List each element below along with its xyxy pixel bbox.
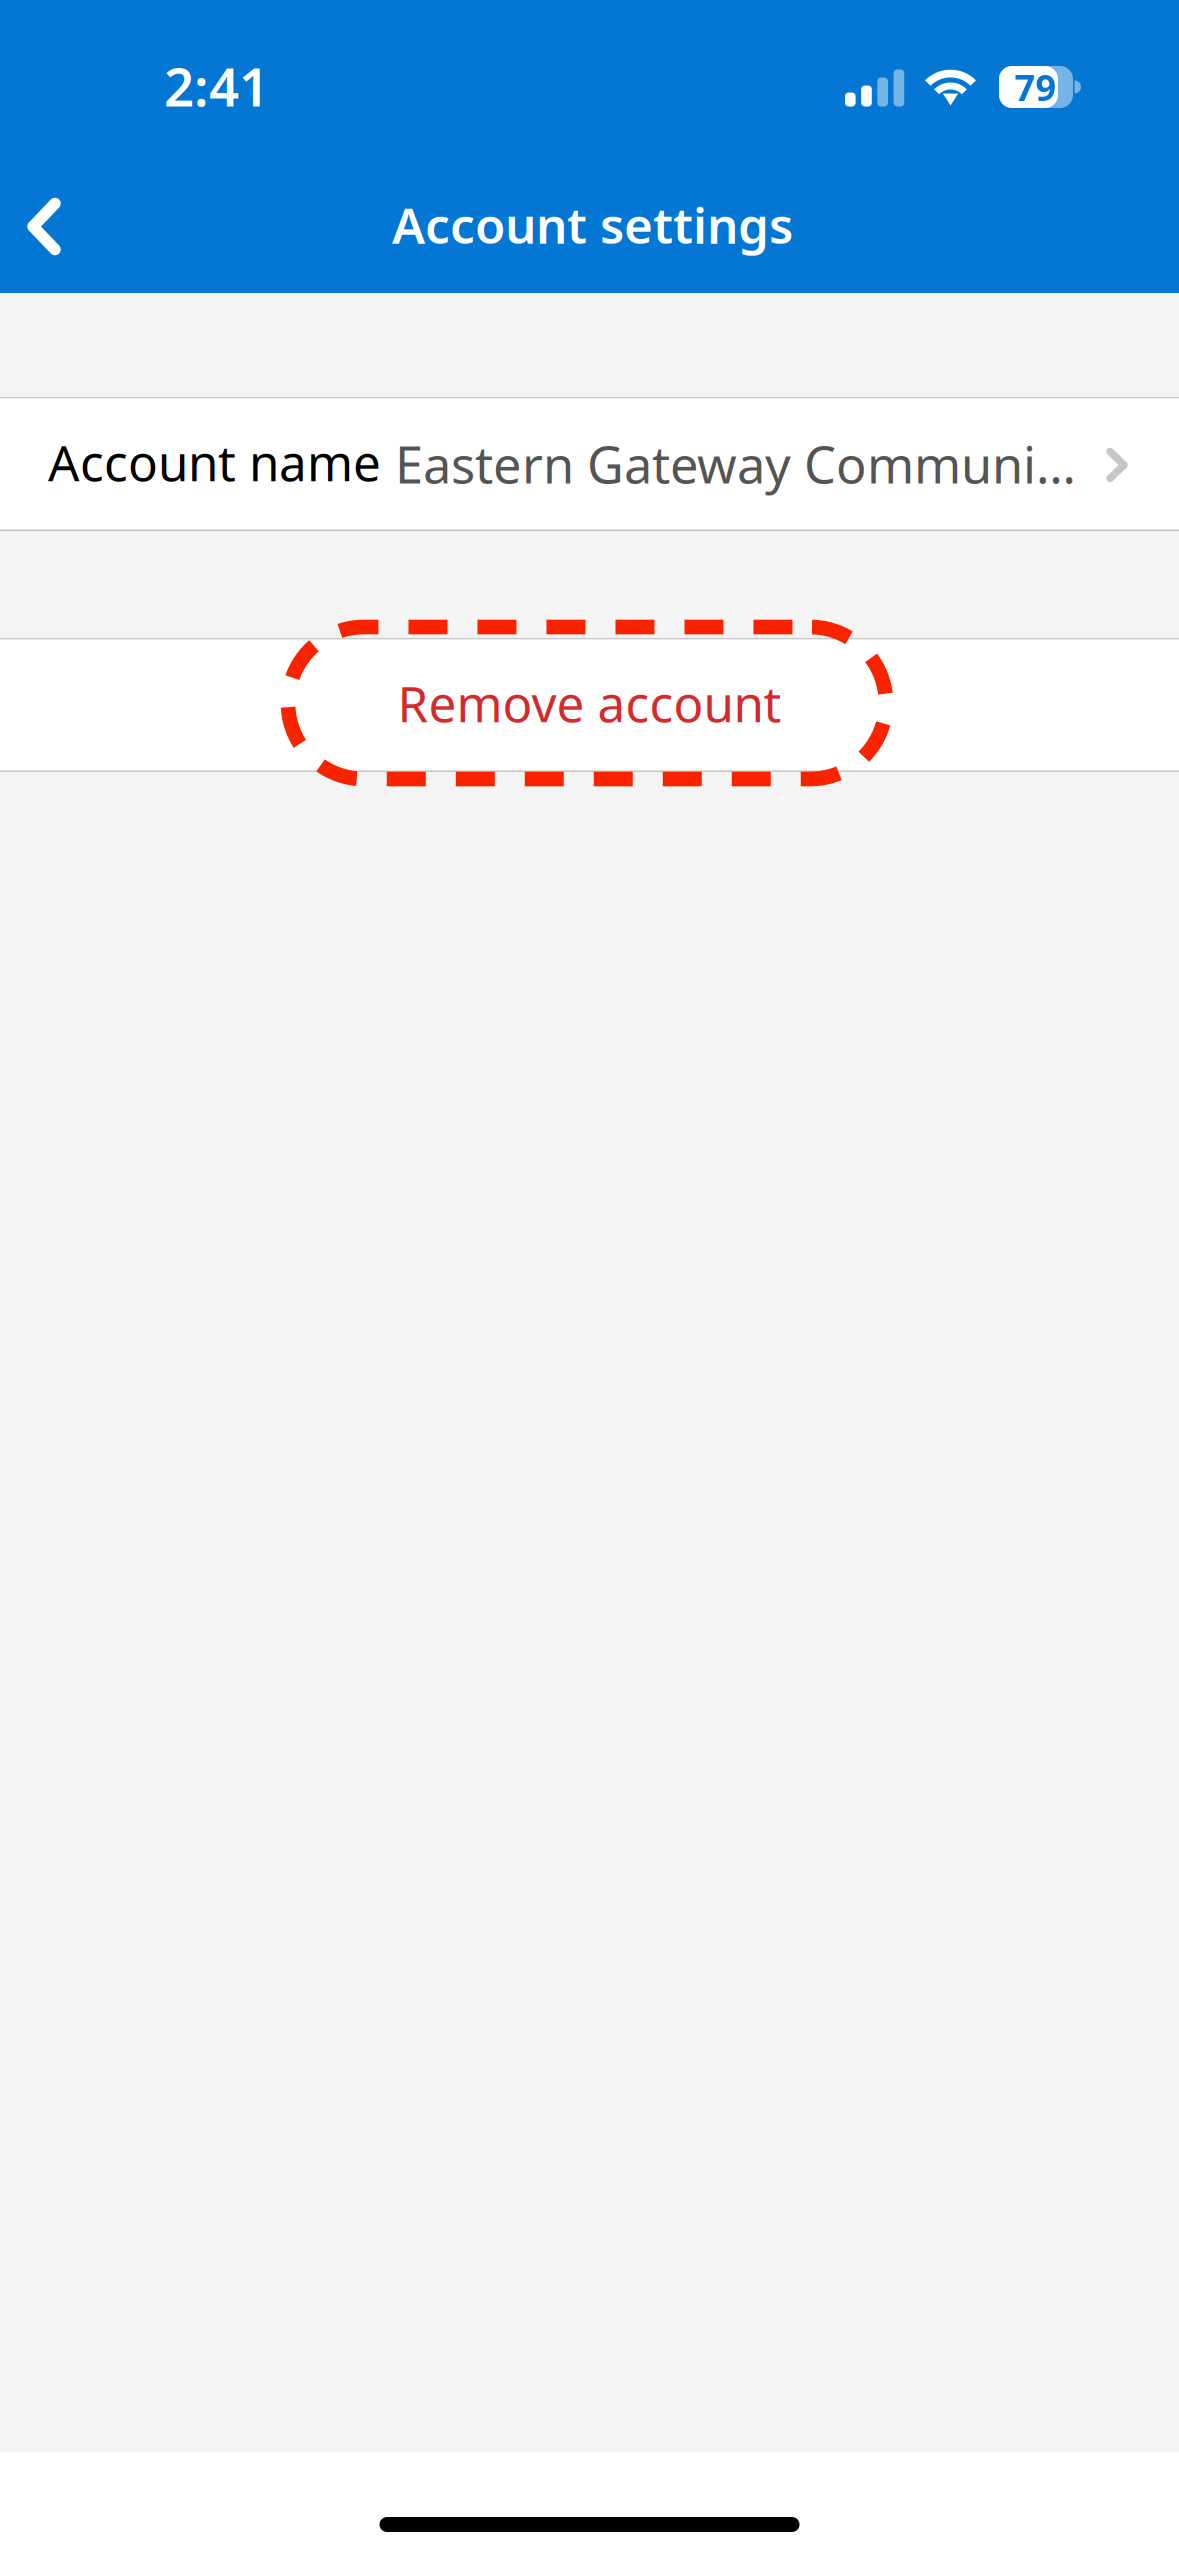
staticText: 79 xyxy=(1014,63,1056,111)
button[interactable]: Remove account xyxy=(0,639,1179,770)
button[interactable]: Back xyxy=(0,150,94,293)
button[interactable]: Account name xyxy=(0,398,1179,529)
staticText: Account name xyxy=(48,429,381,495)
staticText: Remove account xyxy=(397,670,781,736)
staticText: Eastern Gateway Communi… xyxy=(395,430,1076,498)
staticText: 2:41 xyxy=(164,50,269,122)
staticText: Account settings xyxy=(392,192,793,257)
